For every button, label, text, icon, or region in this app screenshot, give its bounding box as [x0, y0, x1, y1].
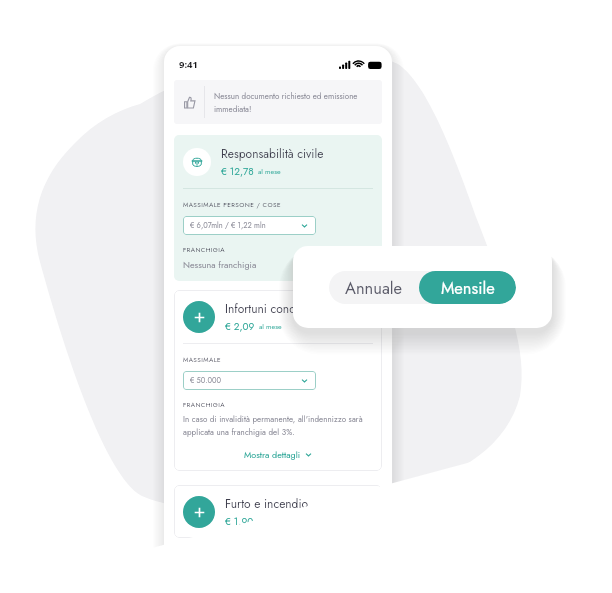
staticText: FRANCHIGIA [183, 400, 225, 409]
staticText: Responsabilità civile [221, 145, 324, 162]
button[interactable]: € 6,07mln / € 1,22 mln [183, 216, 316, 235]
staticText: € 50.000 [190, 375, 222, 386]
staticText: Mensile [441, 276, 495, 300]
staticText: MASSIMALE PERSONE / COSE [183, 200, 281, 209]
staticText: Annuale [345, 276, 403, 300]
staticText: 9:41 [179, 58, 198, 71]
button[interactable]: Aggiungi Furto e incendio [183, 496, 215, 528]
staticText: Furto e incendio [225, 495, 309, 512]
staticText: € 2,09 [225, 319, 255, 333]
staticText: Infortuni conducente [225, 300, 330, 317]
staticText: € 12,78 [221, 164, 254, 178]
staticText: € 6,07mln / € 1,22 mln [190, 220, 266, 231]
staticText: al mese [258, 167, 281, 177]
staticText: Mostra dettagli [244, 448, 301, 461]
button[interactable]: Mensile [419, 271, 516, 304]
staticText: FRANCHIGIA [183, 245, 225, 254]
staticText: In caso di invalidità permanente, all'in… [183, 413, 373, 438]
staticText: Nessuna franchigia [183, 258, 257, 271]
button[interactable]: Aggiungi Infortuni conducente [183, 301, 215, 333]
button[interactable]: Annuale [329, 271, 419, 304]
staticText: MASSIMALE [183, 355, 221, 364]
button[interactable]: Mostra dettagli [183, 448, 373, 461]
button[interactable]: € 50.000 [183, 371, 316, 390]
staticText: Nessun documento richiesto ed emissione … [214, 90, 377, 115]
button[interactable]: Nessun documento richiesto ed emissione … [174, 80, 382, 124]
staticText: al mese [259, 322, 282, 332]
staticText: € 1,90 [225, 514, 254, 528]
